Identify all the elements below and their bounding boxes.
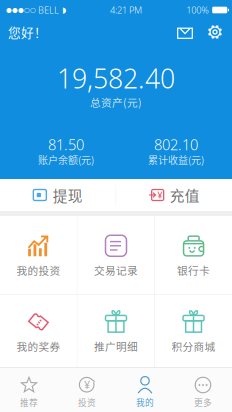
staticText: 我的奖券: [16, 338, 60, 354]
button[interactable]: ¥: [58, 368, 116, 412]
staticText: 100%: [186, 4, 209, 16]
staticText: 总资产(元): [90, 94, 142, 110]
button[interactable]: 交易记录: [78, 216, 154, 294]
staticText: 81.50: [48, 134, 84, 154]
staticText: 银行卡: [177, 262, 210, 278]
button[interactable]: ¥: [116, 179, 232, 211]
staticText: 积分商城: [172, 338, 216, 354]
staticText: 我的投资: [16, 262, 60, 278]
staticText: ●●●○○: [6, 6, 36, 14]
button[interactable]: 我的: [116, 368, 174, 412]
staticText: 推广明细: [94, 338, 138, 354]
staticText: 交易记录: [94, 262, 138, 278]
button[interactable]: 推荐: [0, 368, 58, 412]
button[interactable]: 我的奖券: [0, 295, 77, 367]
button[interactable]: 提现: [0, 179, 116, 211]
staticText: 19,582.40: [57, 60, 175, 96]
staticText: 4:21 PM: [110, 4, 142, 16]
staticText: 您好！: [8, 23, 47, 41]
staticText: 推荐: [20, 396, 38, 408]
button[interactable]: 我的投资: [0, 216, 77, 294]
staticText: ¥: [157, 189, 162, 201]
staticText: 投资: [78, 396, 96, 408]
staticText: 充值: [170, 184, 200, 206]
button[interactable]: 银行卡: [155, 216, 232, 294]
staticText: 累计收益(元): [148, 152, 204, 167]
button[interactable]: Settings: [200, 20, 230, 44]
staticText: 账户余额(元): [38, 152, 94, 167]
button[interactable]: Messages: [170, 20, 200, 44]
staticText: 我的: [136, 396, 154, 408]
staticText: ¥: [84, 377, 90, 392]
button[interactable]: 推广明细: [78, 295, 154, 367]
button[interactable]: 积分商城: [155, 295, 232, 367]
button[interactable]: 更多: [174, 368, 232, 412]
staticText: BELL: [36, 4, 59, 16]
staticText: 更多: [194, 396, 212, 408]
staticText: 提现: [53, 184, 83, 206]
staticText: ◗: [59, 5, 66, 15]
staticText: 802.10: [154, 134, 198, 154]
